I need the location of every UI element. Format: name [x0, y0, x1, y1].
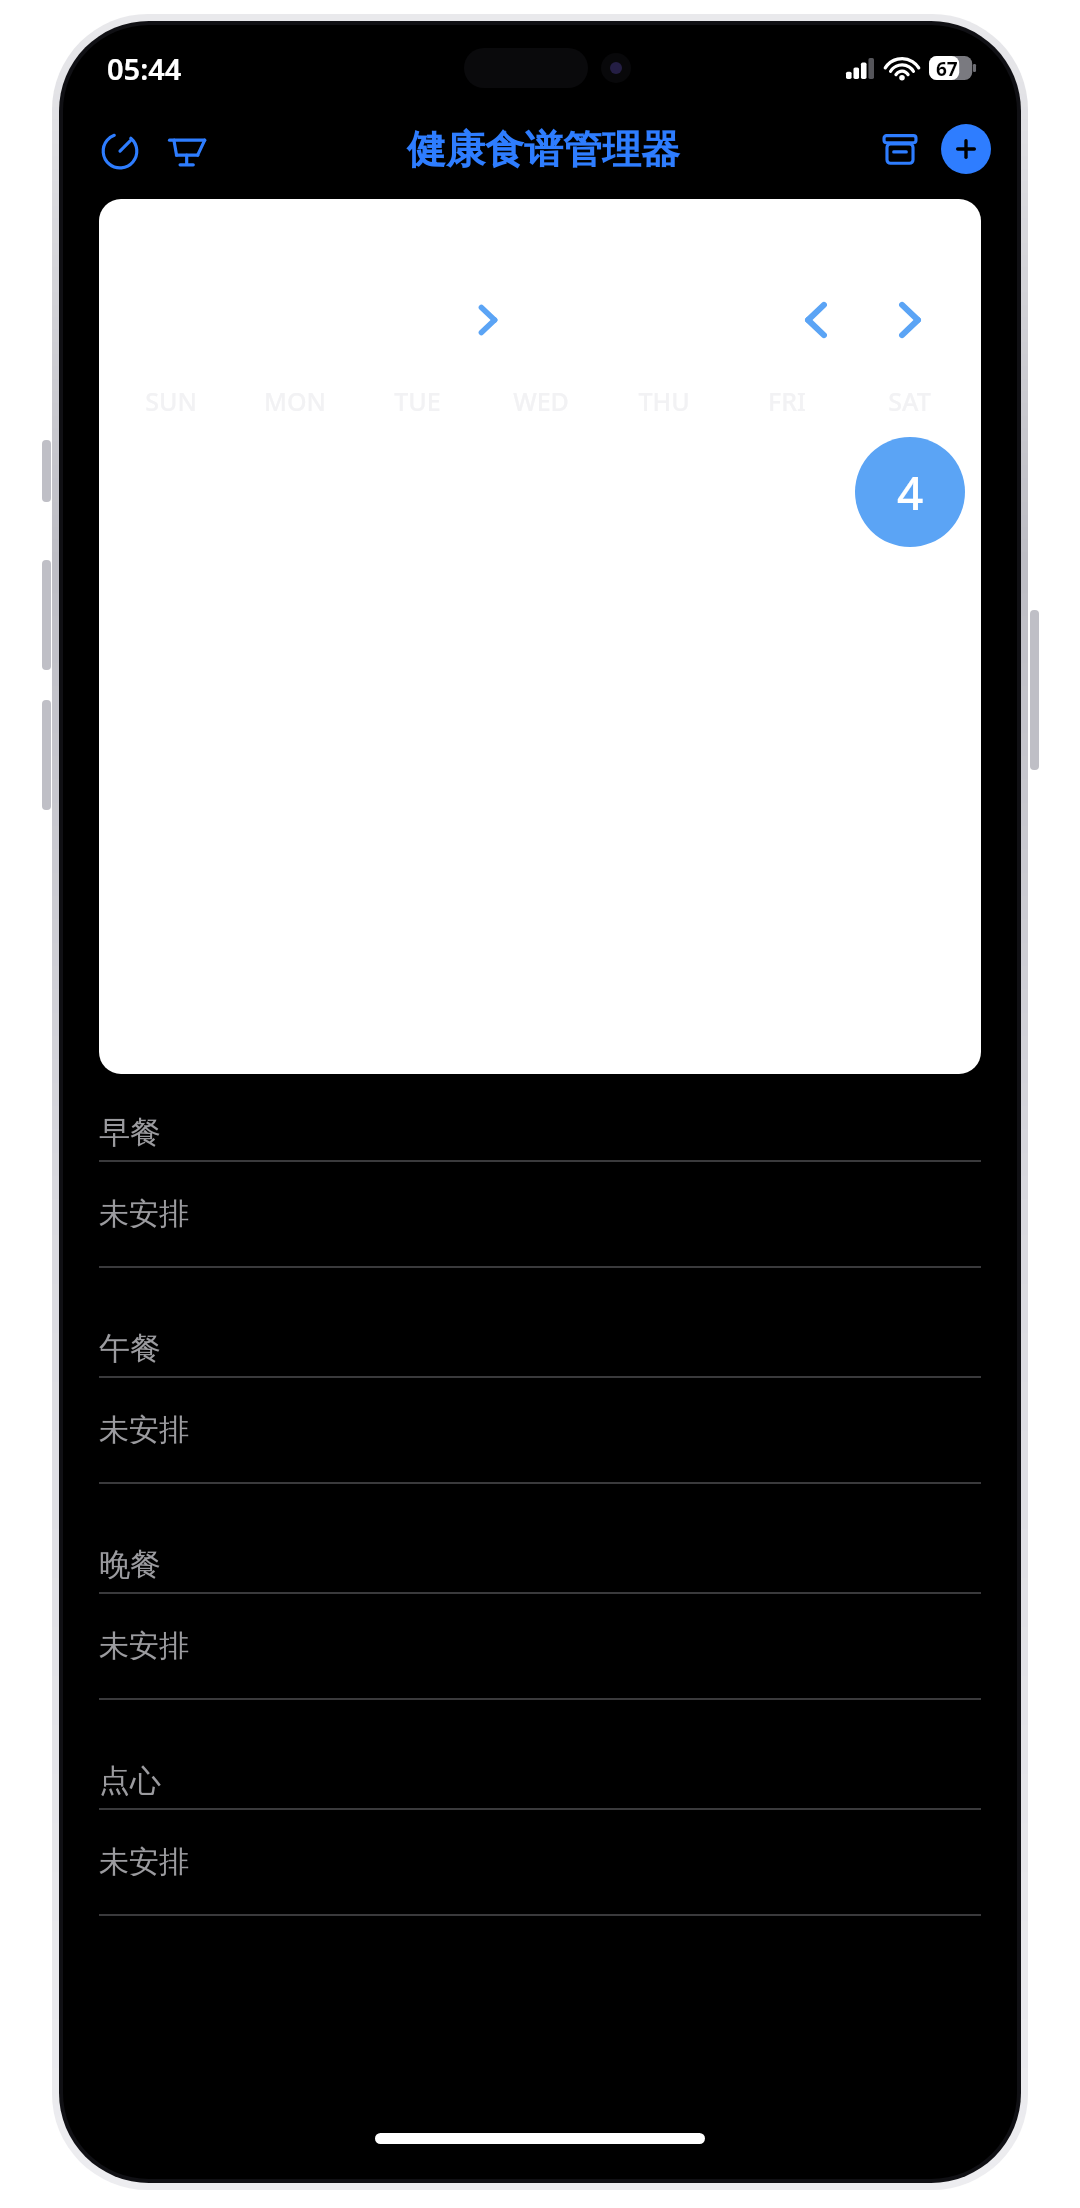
- staticText: 未安排: [99, 1195, 189, 1233]
- button[interactable]: Previous month: [781, 287, 851, 353]
- staticText: WED: [513, 384, 569, 418]
- staticText: 晚餐: [99, 1545, 161, 1584]
- button[interactable]: 未安排: [99, 1594, 981, 1698]
- button[interactable]: 未安排: [99, 1810, 981, 1914]
- button[interactable]: 未安排: [99, 1162, 981, 1266]
- staticText: 午餐: [99, 1329, 161, 1368]
- staticText: THU: [638, 384, 690, 418]
- button[interactable]: Add: [941, 124, 991, 174]
- staticText: 点心: [99, 1761, 161, 1800]
- staticText: FRI: [768, 384, 806, 418]
- button[interactable]: 4: [855, 437, 965, 547]
- staticText: 4: [897, 461, 924, 524]
- staticText: 67: [936, 56, 958, 80]
- button[interactable]: Shopping list: [157, 118, 219, 180]
- staticText: MON: [264, 384, 326, 418]
- staticText: 05:44: [107, 49, 182, 88]
- button[interactable]: 未安排: [99, 1378, 981, 1482]
- staticText: SUN: [145, 384, 197, 418]
- button[interactable]: Archive: [869, 118, 931, 180]
- staticText: 未安排: [99, 1411, 189, 1449]
- button[interactable]: Expand month: [455, 287, 521, 353]
- staticText: 健康食谱管理器: [407, 125, 680, 174]
- button[interactable]: Next month: [875, 287, 945, 353]
- staticText: 早餐: [99, 1113, 161, 1152]
- staticText: SAT: [888, 384, 931, 418]
- staticText: 未安排: [99, 1627, 189, 1665]
- button[interactable]: History: [89, 118, 151, 180]
- staticText: 未安排: [99, 1843, 189, 1881]
- staticText: TUE: [394, 384, 441, 418]
